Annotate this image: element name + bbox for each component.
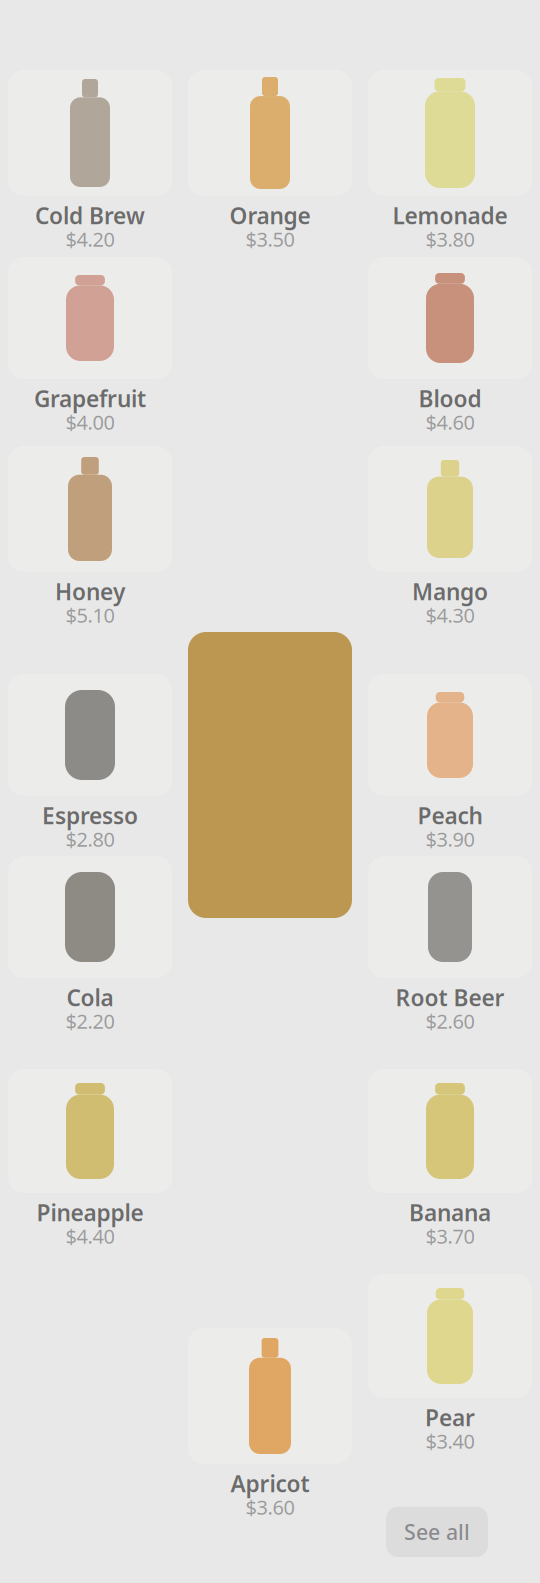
staticText: Cola bbox=[66, 982, 113, 1012]
button[interactable]: Root Beer bbox=[360, 856, 540, 1069]
staticText: $5.10 bbox=[65, 602, 114, 628]
staticText: Pear bbox=[425, 1402, 475, 1432]
button[interactable]: See all bbox=[386, 1507, 488, 1557]
staticText: $2.20 bbox=[65, 1008, 114, 1034]
staticText: Lemonade bbox=[392, 200, 507, 230]
button[interactable]: Honey bbox=[0, 446, 180, 674]
button[interactable]: Cold Brew bbox=[0, 70, 180, 257]
staticText: See all bbox=[404, 1518, 470, 1546]
staticText: Mango bbox=[412, 576, 488, 606]
staticText: $3.40 bbox=[425, 1428, 474, 1454]
staticText: Honey bbox=[55, 576, 125, 606]
button[interactable]: Espresso bbox=[0, 674, 180, 856]
staticText: $3.70 bbox=[425, 1223, 474, 1249]
button[interactable]: Mango bbox=[360, 446, 540, 674]
button[interactable]: Orange bbox=[180, 70, 360, 257]
staticText: Pineapple bbox=[36, 1197, 143, 1227]
staticText: Root Beer bbox=[395, 982, 504, 1012]
staticText: Espresso bbox=[42, 800, 138, 830]
staticText: Grapefruit bbox=[34, 383, 146, 413]
staticText: Blood bbox=[418, 383, 481, 413]
button[interactable]: Lemonade bbox=[360, 70, 540, 257]
staticText: $3.90 bbox=[425, 826, 474, 852]
staticText: $4.20 bbox=[65, 226, 114, 252]
staticText: Banana bbox=[409, 1197, 491, 1227]
staticText: $4.40 bbox=[65, 1223, 114, 1249]
button[interactable]: Apricot bbox=[180, 1328, 360, 1538]
staticText: Orange bbox=[229, 200, 310, 230]
staticText: Peach bbox=[417, 800, 482, 830]
staticText: Apricot bbox=[230, 1468, 309, 1498]
staticText: $4.00 bbox=[65, 409, 114, 435]
button[interactable]: Grapefruit bbox=[0, 257, 180, 446]
button[interactable] bbox=[180, 632, 360, 918]
staticText: Cold Brew bbox=[35, 200, 145, 230]
button[interactable]: Banana bbox=[360, 1069, 540, 1274]
staticText: $4.30 bbox=[425, 602, 474, 628]
staticText: $2.80 bbox=[65, 826, 114, 852]
staticText: $3.60 bbox=[245, 1494, 294, 1520]
staticText: $4.60 bbox=[425, 409, 474, 435]
button[interactable]: Blood bbox=[360, 257, 540, 446]
button[interactable]: Peach bbox=[360, 674, 540, 856]
staticText: $2.60 bbox=[425, 1008, 474, 1034]
button[interactable]: Cola bbox=[0, 856, 180, 1069]
button[interactable]: Pineapple bbox=[0, 1069, 180, 1274]
staticText: $3.50 bbox=[245, 226, 294, 252]
button[interactable]: Pear bbox=[360, 1274, 540, 1479]
staticText: $3.80 bbox=[425, 226, 474, 252]
